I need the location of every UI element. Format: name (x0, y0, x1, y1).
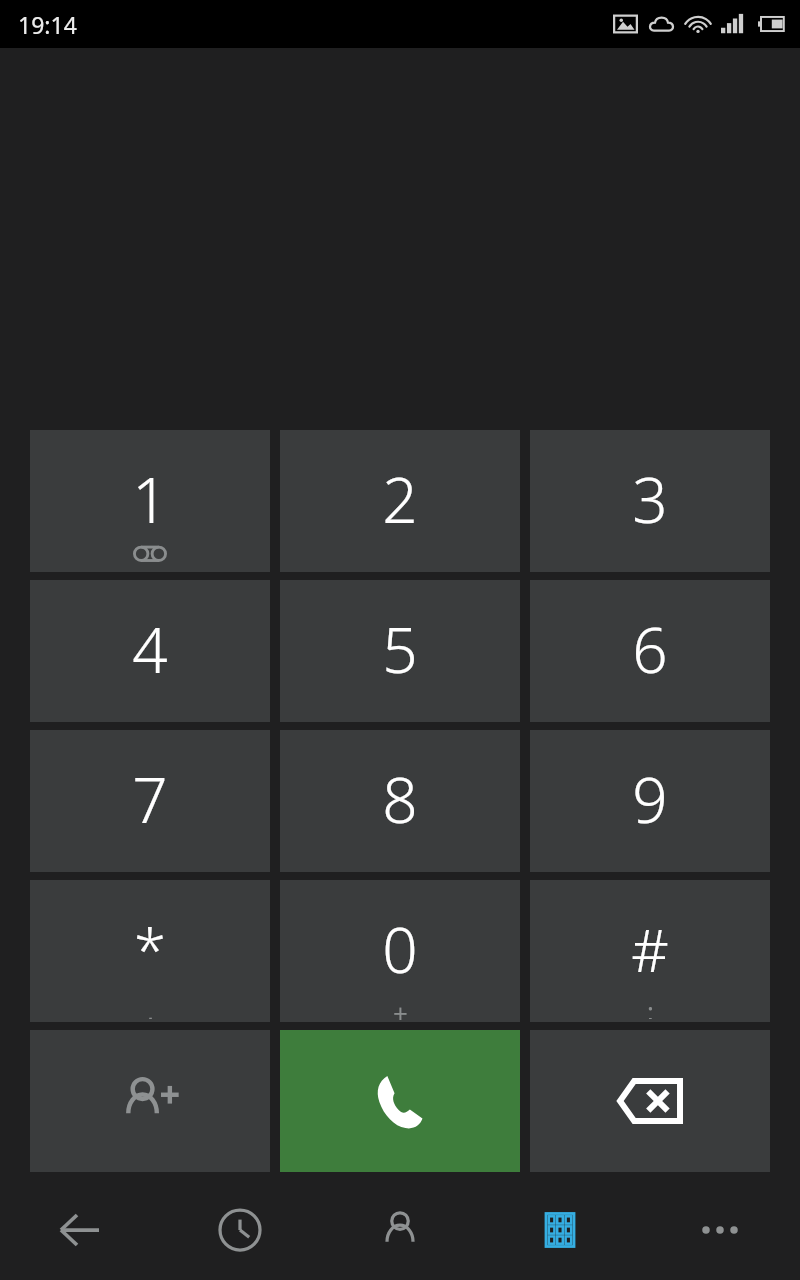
staticText: 3 (632, 457, 668, 541)
button[interactable]: 9 (530, 730, 770, 872)
button[interactable]: Backspace (530, 1030, 770, 1172)
button[interactable]: 3 (530, 430, 770, 572)
button[interactable]: 4 (30, 580, 270, 722)
staticText: 19:14 (18, 9, 77, 40)
staticText: 9 (632, 757, 668, 841)
staticText: 1 (132, 457, 168, 541)
button[interactable]: Recents (160, 1180, 320, 1280)
button[interactable]: Keypad (480, 1180, 640, 1280)
button[interactable]: Call (280, 1030, 520, 1172)
button[interactable]: Add contact (30, 1030, 270, 1172)
button[interactable]: 5 (280, 580, 520, 722)
staticText: 7 (132, 757, 168, 841)
staticText: * (134, 910, 166, 989)
staticText: , (147, 993, 154, 1019)
button[interactable]: * (30, 880, 270, 1022)
staticText: 4 (132, 607, 168, 691)
button[interactable]: Back (0, 1180, 160, 1280)
button[interactable]: 6 (530, 580, 770, 722)
staticText: 2 (382, 457, 418, 541)
staticText: # (631, 910, 669, 989)
button[interactable]: 2 (280, 430, 520, 572)
button[interactable]: # (530, 880, 770, 1022)
button[interactable]: 0 (280, 880, 520, 1022)
button[interactable]: 8 (280, 730, 520, 872)
button[interactable]: 1 (30, 430, 270, 572)
staticText: ; (647, 993, 654, 1019)
staticText: 5 (382, 607, 418, 691)
staticText: 8 (382, 757, 418, 841)
button[interactable]: More options (640, 1180, 800, 1280)
button[interactable]: Contacts (320, 1180, 480, 1280)
staticText: 6 (632, 607, 668, 691)
staticText: + (393, 995, 408, 1021)
staticText: 0 (382, 907, 418, 991)
button[interactable]: 7 (30, 730, 270, 872)
